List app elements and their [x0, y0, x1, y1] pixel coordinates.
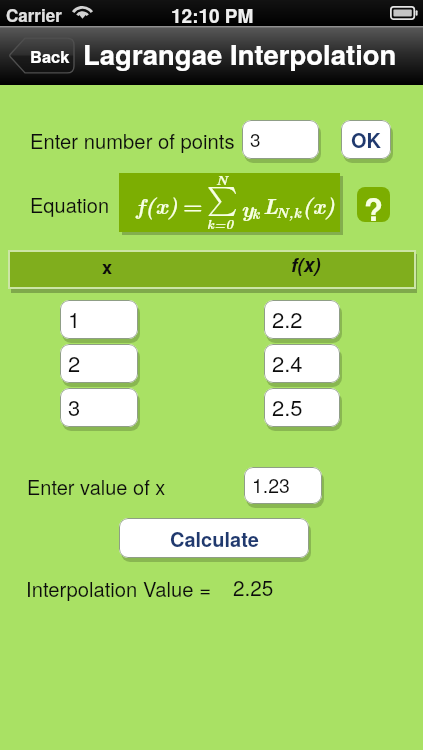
staticText: 2.5 — [272, 391, 303, 423]
staticText: Carrier — [6, 3, 62, 27]
button[interactable]: Back — [8, 37, 75, 74]
staticText: k=0 — [207, 214, 234, 233]
staticText: 12:10 PM — [171, 2, 254, 28]
staticText: y — [241, 192, 254, 224]
staticText: f(x) — [291, 251, 321, 278]
staticText: 2 — [68, 347, 81, 379]
button[interactable]: 2.5 — [264, 388, 340, 427]
button[interactable]: 2.2 — [264, 300, 340, 339]
staticText: L — [263, 189, 279, 221]
button[interactable]: OK — [341, 120, 391, 159]
staticText: ? — [364, 187, 383, 221]
staticText: OK — [351, 125, 381, 154]
staticText: 2.25 — [233, 572, 274, 602]
staticText: Equation — [30, 190, 110, 219]
staticText: 3 — [250, 125, 261, 152]
staticText: 2.4 — [272, 347, 303, 379]
staticText: Lagrangae Interpolation — [83, 34, 397, 73]
staticText: N,k — [276, 202, 301, 222]
staticText: Enter value of x — [27, 472, 166, 501]
staticText: ∑ — [207, 186, 238, 215]
staticText: 1.23 — [252, 471, 290, 499]
button[interactable]: Help — [357, 187, 390, 222]
button[interactable]: 3 — [242, 120, 319, 159]
staticText: (x) — [302, 189, 336, 221]
button[interactable]: 1.23 — [244, 467, 322, 504]
staticText: f(x) — [136, 189, 178, 221]
staticText: = — [183, 189, 203, 220]
staticText: 3 — [68, 391, 81, 423]
staticText: Interpolation Value = — [26, 574, 211, 603]
button[interactable]: 2 — [60, 344, 138, 383]
staticText: Back — [30, 44, 70, 68]
staticText: Calculate — [170, 524, 259, 553]
button[interactable]: 2.4 — [264, 344, 340, 383]
staticText: N — [216, 170, 228, 189]
staticText: 2.2 — [272, 303, 303, 335]
button[interactable]: 3 — [60, 388, 138, 427]
button[interactable]: Calculate — [119, 518, 309, 558]
staticText: k — [252, 203, 260, 223]
staticText: x — [102, 253, 113, 279]
staticText: Enter number of points — [30, 126, 235, 155]
button[interactable]: 1 — [60, 300, 138, 339]
staticText: 1 — [68, 303, 81, 335]
